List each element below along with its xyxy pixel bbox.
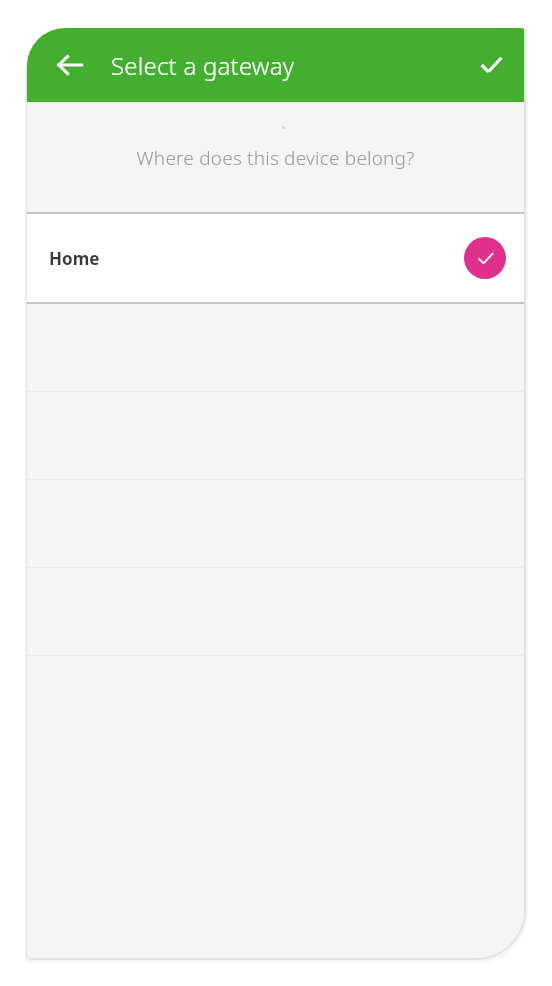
button[interactable]: Confirm (468, 42, 514, 88)
staticText: Where does this device belong? (27, 145, 524, 171)
button[interactable]: Selected (464, 237, 506, 279)
staticText: Select a gateway (111, 49, 295, 82)
button[interactable]: Back (49, 44, 91, 86)
button[interactable]: Home (27, 214, 524, 302)
staticText: Home (49, 247, 100, 270)
